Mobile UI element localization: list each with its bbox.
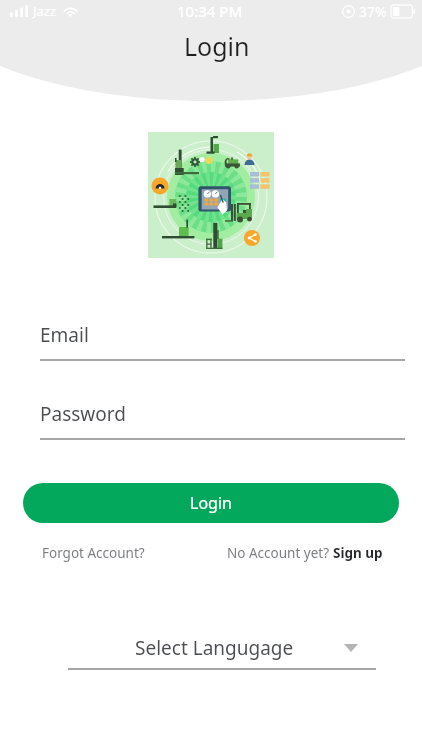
button[interactable]: No Account yet? (227, 544, 383, 562)
staticText: Sign up (333, 544, 383, 562)
button[interactable]: Password (40, 401, 405, 440)
button[interactable]: Select Langugage (68, 634, 376, 670)
staticText: 10:34 PM (177, 1, 243, 21)
staticText: Forgot Account? (42, 544, 145, 562)
button[interactable]: Forgot Account? (42, 544, 145, 562)
staticText: Select Langugage (135, 635, 294, 661)
staticText: Jazz (33, 2, 57, 20)
staticText: 37% (359, 2, 387, 21)
staticText: Password (40, 401, 126, 427)
staticText: Email (40, 322, 89, 348)
staticText: Login (190, 492, 232, 514)
button[interactable]: Email (40, 322, 405, 361)
staticText: No Account yet? (227, 544, 333, 562)
button[interactable]: Login (23, 483, 399, 523)
staticText: Login (184, 29, 250, 63)
